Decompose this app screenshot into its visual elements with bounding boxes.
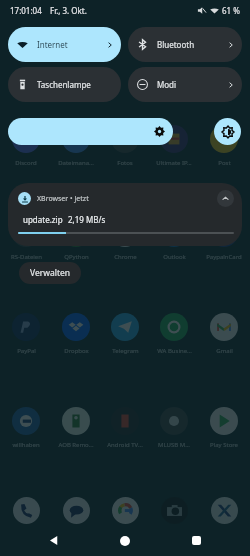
button[interactable]: Einklappen bbox=[217, 190, 234, 207]
button[interactable]: Startbildschirm bbox=[105, 525, 145, 556]
staticText: XBrowser • Jetzt bbox=[37, 194, 89, 204]
button[interactable]: Verwalten bbox=[19, 262, 81, 284]
staticText: Taschenlampe bbox=[37, 79, 91, 90]
button[interactable]: Telegram bbox=[102, 313, 148, 355]
staticText: Fr., 3. Okt. bbox=[50, 5, 87, 16]
button[interactable]: AOB Remo... bbox=[53, 407, 99, 449]
button[interactable]: Play Store bbox=[201, 407, 247, 449]
staticText: Verwalten bbox=[30, 267, 70, 279]
staticText: Fotos bbox=[117, 159, 133, 167]
staticText: WA Busine... bbox=[157, 347, 192, 355]
staticText: RS-Dateien bbox=[11, 253, 42, 261]
button[interactable]: Dateimana... bbox=[53, 125, 99, 167]
staticText: PayPal bbox=[17, 347, 36, 355]
staticText: Telegram bbox=[112, 347, 139, 355]
staticText: Chrome bbox=[114, 253, 137, 261]
button[interactable]: Automatische Helligkeit bbox=[214, 118, 241, 145]
staticText: Gmail bbox=[216, 347, 233, 355]
staticText: Post bbox=[218, 159, 231, 167]
button[interactable] bbox=[3, 497, 49, 524]
button[interactable] bbox=[8, 118, 208, 145]
button[interactable]: Dropbox bbox=[53, 313, 99, 355]
button[interactable]: Gmail bbox=[201, 313, 247, 355]
button[interactable]: Post bbox=[201, 125, 247, 167]
button[interactable] bbox=[102, 497, 148, 524]
staticText: PaypalnCard bbox=[206, 253, 242, 261]
staticText: AOB Remo... bbox=[58, 441, 94, 449]
button[interactable] bbox=[151, 497, 197, 524]
staticText: 61 % bbox=[222, 5, 240, 16]
button[interactable]: Bluetooth bbox=[128, 27, 242, 62]
button[interactable]: Android TV... bbox=[102, 407, 148, 449]
button[interactable]: Fotos bbox=[102, 125, 148, 167]
staticText: 17:01:04 bbox=[10, 5, 42, 16]
button[interactable]: Internet bbox=[8, 27, 121, 62]
button[interactable]: Outlook bbox=[151, 219, 197, 261]
staticText: update.zip bbox=[23, 214, 63, 225]
button[interactable]: Übersicht bbox=[176, 525, 216, 556]
staticText: willhaben bbox=[12, 441, 40, 449]
button[interactable]: willhaben bbox=[3, 407, 49, 449]
staticText: Modi bbox=[157, 79, 177, 90]
button[interactable]: MLUSB M... bbox=[151, 407, 197, 449]
staticText: Internet bbox=[37, 39, 68, 50]
staticText: Dateimana... bbox=[58, 159, 94, 167]
button[interactable]: Zurück bbox=[33, 525, 73, 556]
button[interactable]: Discord bbox=[3, 125, 49, 167]
staticText: Discord bbox=[15, 159, 37, 167]
button[interactable]: QPython bbox=[53, 219, 99, 261]
staticText: Dropbox bbox=[64, 347, 89, 355]
button[interactable]: Modi bbox=[128, 67, 242, 102]
staticText: MLUSB M... bbox=[158, 441, 190, 449]
button[interactable] bbox=[53, 497, 99, 524]
button[interactable]: XBrowser • Jetzt bbox=[8, 183, 242, 246]
button[interactable]: Taschenlampe bbox=[8, 67, 121, 102]
button[interactable]: RS-Dateien bbox=[3, 219, 49, 261]
staticText: Android TV... bbox=[107, 441, 143, 449]
staticText: Ultimate IP... bbox=[156, 159, 192, 167]
staticText: 2,19 MB/s bbox=[68, 214, 106, 225]
button[interactable]: WA Busine... bbox=[151, 313, 197, 355]
staticText: QPython bbox=[64, 253, 89, 261]
button[interactable]: PayPal bbox=[3, 313, 49, 355]
button[interactable]: PaypalnCard bbox=[201, 219, 247, 261]
button[interactable]: Chrome bbox=[102, 219, 148, 261]
staticText: Bluetooth bbox=[157, 39, 195, 50]
button[interactable] bbox=[201, 497, 247, 524]
staticText: Outlook bbox=[163, 253, 186, 261]
staticText: Play Store bbox=[210, 441, 238, 449]
button[interactable]: Ultimate IP... bbox=[151, 125, 197, 167]
